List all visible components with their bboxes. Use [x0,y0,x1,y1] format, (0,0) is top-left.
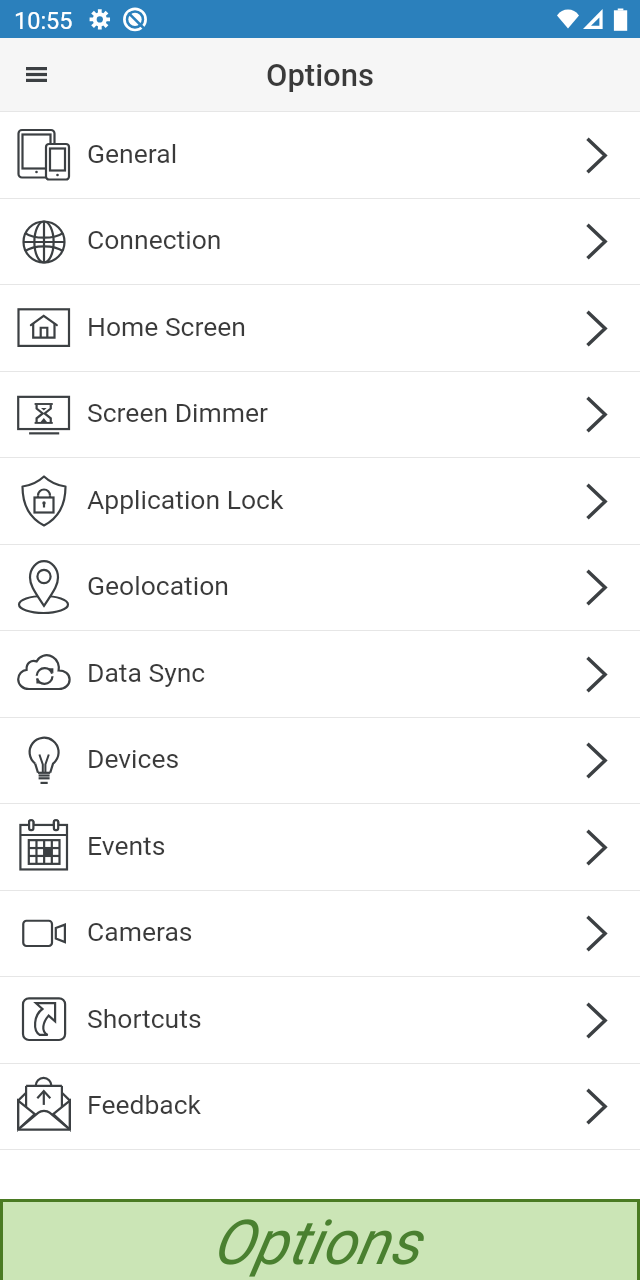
button[interactable]: Data Sync [0,631,640,717]
button[interactable]: Feedback [0,1064,640,1149]
button[interactable]: Devices [0,718,640,803]
button[interactable]: Options [3,1202,637,1280]
staticText: Feedback [87,1089,202,1120]
staticText: Geolocation [87,570,229,601]
button[interactable]: Home Screen [0,285,640,371]
staticText: Screen Dimmer [87,397,268,428]
staticText: Options [266,57,375,93]
staticText: Data Sync [87,657,206,688]
staticText: Devices [87,743,180,774]
button[interactable]: Connection [0,199,640,284]
staticText: Application Lock [87,484,284,515]
button[interactable]: Cameras [0,891,640,976]
staticText: Shortcuts [87,1003,202,1034]
staticText: Cameras [87,916,193,947]
button[interactable]: Screen Dimmer [0,372,640,457]
button[interactable]: Shortcuts [0,977,640,1063]
button[interactable]: Events [0,804,640,890]
staticText: General [87,138,178,169]
button[interactable]: General [0,112,640,198]
staticText: Events [87,830,166,861]
staticText: Options [212,1206,421,1279]
button[interactable]: Application Lock [0,458,640,544]
staticText: 10:55 [14,7,73,35]
staticText: Home Screen [87,311,246,342]
button[interactable]: Menu [0,38,72,111]
staticText: Connection [87,224,222,255]
button[interactable]: Geolocation [0,545,640,630]
